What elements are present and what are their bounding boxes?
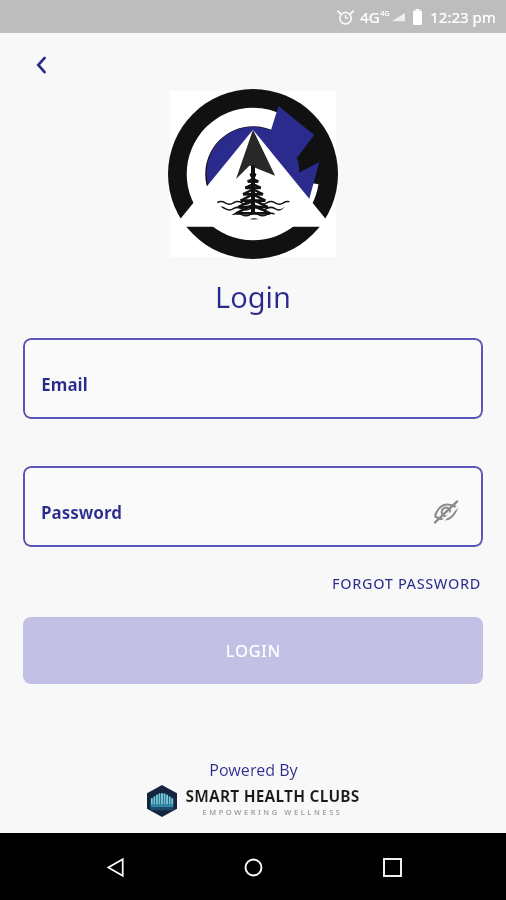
button[interactable]: Home: [229, 843, 277, 891]
staticText: FORGOT PASSWORD: [332, 573, 481, 593]
staticText: Password: [41, 501, 122, 524]
button[interactable]: Back: [22, 45, 62, 85]
staticText: LOGIN: [226, 640, 281, 662]
staticText: 4G: [380, 9, 390, 19]
button[interactable]: Recent apps: [368, 843, 416, 891]
button[interactable]: Password: [23, 466, 483, 547]
staticText: Login: [215, 277, 291, 316]
button[interactable]: Back: [91, 843, 139, 891]
staticText: Email: [41, 373, 88, 396]
button[interactable]: Show password: [427, 493, 465, 531]
staticText: 4G: [360, 7, 380, 27]
staticText: EMPOWERING WELLNESS: [202, 807, 343, 817]
staticText: SMART HEALTH CLUBS: [185, 785, 360, 806]
button[interactable]: LOGIN: [23, 617, 483, 684]
staticText: 12:23 pm: [430, 7, 496, 27]
button[interactable]: Email: [23, 338, 483, 419]
staticText: Powered By: [209, 759, 298, 781]
button[interactable]: FORGOT PASSWORD: [330, 569, 483, 597]
